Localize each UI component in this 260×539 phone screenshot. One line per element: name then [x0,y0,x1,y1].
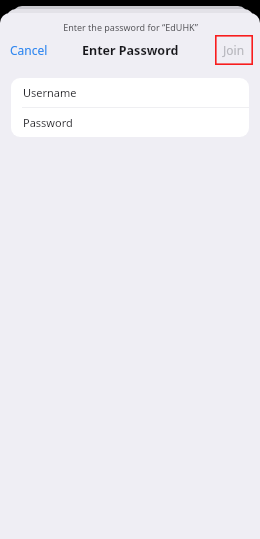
button[interactable]: Password [11,108,249,137]
button[interactable]: Username [11,78,249,107]
staticText: Join [223,42,245,58]
staticText: Enter the password for “EdUHK” [63,21,198,33]
staticText: Password [23,115,73,130]
staticText: Enter Password [82,42,179,59]
button[interactable]: Cancel [0,34,58,66]
staticText: Cancel [10,42,48,58]
staticText: Username [23,85,77,100]
button[interactable]: Join [215,35,253,65]
